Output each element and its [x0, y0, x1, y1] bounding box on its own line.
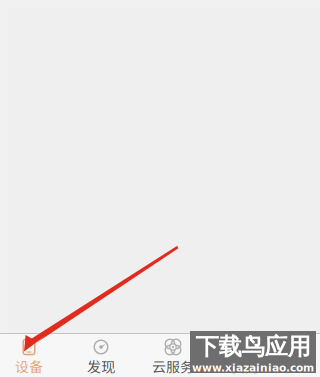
button[interactable]: 设备 [0, 334, 65, 377]
button[interactable]: 发现 [65, 334, 137, 377]
staticText: 云服务 [152, 356, 194, 376]
staticText: www.xiazainiao.com [192, 361, 314, 374]
button[interactable]: 我的 [209, 334, 281, 377]
button[interactable]: 云服务 [137, 334, 209, 377]
staticText: 下载鸟应用 [195, 332, 310, 361]
staticText: 设备 [15, 356, 43, 376]
staticText: 发现 [87, 356, 115, 376]
staticText: 我的 [231, 356, 259, 376]
